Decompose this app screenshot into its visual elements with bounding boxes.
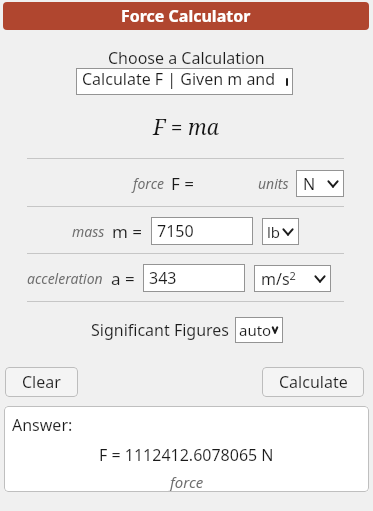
staticText: N <box>303 173 316 195</box>
staticText: Force Calculator <box>121 5 251 27</box>
button[interactable]: 343 <box>143 264 245 292</box>
staticText: 7150 <box>157 220 194 242</box>
staticText: mass <box>72 222 105 241</box>
staticText: m = <box>112 220 143 243</box>
button[interactable]: Force Calculator <box>3 2 369 30</box>
button[interactable]: m/s2 <box>254 265 331 292</box>
button[interactable]: Calculate <box>262 367 364 397</box>
staticText: units <box>258 174 289 193</box>
button[interactable]: N <box>296 170 344 197</box>
button[interactable]: 7150 <box>151 217 253 245</box>
button[interactable]: lb <box>262 218 299 245</box>
staticText: Answer: <box>12 414 73 436</box>
staticText: auto <box>239 320 272 340</box>
staticText: Calculate F | Given m and a <box>82 68 287 95</box>
staticText: Calculate <box>279 371 348 393</box>
staticText: acceleration <box>27 269 103 288</box>
staticText: Clear <box>22 371 61 393</box>
staticText: Significant Figures <box>91 319 230 341</box>
button[interactable]: auto <box>235 317 283 343</box>
staticText: m/s2 <box>261 268 296 290</box>
staticText: force <box>170 472 204 492</box>
staticText: lb <box>267 222 281 242</box>
staticText: F = <box>171 172 194 195</box>
button[interactable]: Calculate F | Given m and a <box>76 68 293 95</box>
staticText: 343 <box>149 267 177 289</box>
staticText: Choose a Calculation <box>108 47 265 69</box>
button[interactable]: Clear <box>5 367 78 397</box>
staticText: F = ma <box>153 113 220 142</box>
staticText: force <box>133 174 164 193</box>
staticText: F = 1112412.6078065 N <box>99 444 274 466</box>
staticText: a = <box>111 267 135 290</box>
